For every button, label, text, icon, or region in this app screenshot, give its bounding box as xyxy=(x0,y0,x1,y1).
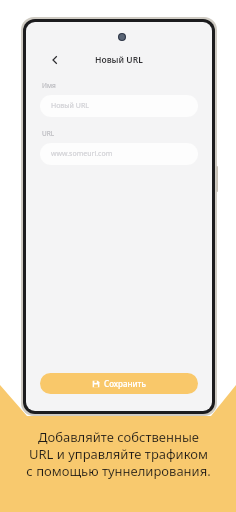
button[interactable]: Сохранить xyxy=(40,373,198,394)
button[interactable]: Новый URL xyxy=(40,95,198,117)
button[interactable]: www.someurl.com xyxy=(40,143,198,165)
staticText: Добавляйте собственные URL и управляйте … xyxy=(26,428,211,480)
staticText: Имя xyxy=(42,81,56,90)
staticText: www.someurl.com xyxy=(51,149,113,159)
staticText: Сохранить xyxy=(104,378,146,389)
staticText: Новый URL xyxy=(95,54,143,66)
staticText: Новый URL xyxy=(51,101,89,111)
staticText: URL xyxy=(42,129,55,138)
button[interactable]: Back xyxy=(46,51,64,69)
